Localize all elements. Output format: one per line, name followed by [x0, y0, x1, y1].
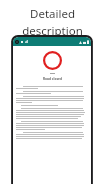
staticText: Detailed: [30, 6, 75, 22]
button[interactable]: Detailed: [0, 6, 104, 39]
staticText: description: [22, 23, 83, 39]
other: Camera: [15, 40, 19, 44]
other: Road closed sign: [43, 51, 62, 70]
staticText: Road closed: [43, 77, 62, 81]
